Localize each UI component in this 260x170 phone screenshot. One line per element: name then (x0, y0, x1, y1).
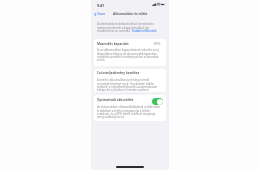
staticText: Ez az akkumulátor kapacitásának mértéke … (97, 48, 162, 61)
button[interactable]: Optimalizált akkutöltés kapcsoló (152, 98, 163, 105)
staticText: Csúcsteljesítmény kezelése (97, 71, 140, 75)
staticText: Akkumulátor és töltés (113, 12, 148, 16)
staticText: Maximális kapacitás (97, 42, 129, 46)
button[interactable]: Maximális kapacitás (94, 39, 166, 66)
staticText: Optimalizált akkutöltés (97, 98, 134, 102)
button[interactable]: Csúcsteljesítmény kezelése (94, 69, 166, 92)
button[interactable]: Vissza (93, 11, 107, 17)
staticText: Az akkumulátor elhasználódásának csökken… (97, 105, 162, 118)
staticText: 85% (154, 42, 161, 46)
staticText: 9:41 (97, 3, 105, 8)
staticText: A telefonakkumulátorok idővel természete… (97, 22, 160, 32)
staticText: Vissza (97, 12, 106, 16)
staticText: A telefon akkumulátora jelenleg normál c… (97, 78, 162, 91)
button[interactable]: Optimalizált akkutöltés (94, 95, 166, 121)
